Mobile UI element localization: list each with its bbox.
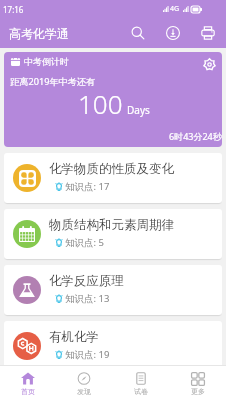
button[interactable]: 物质结构和元素周期律 — [4, 209, 222, 259]
staticText: 物质结构和元素周期律 — [49, 217, 174, 233]
button[interactable]: 化学反应原理 — [4, 265, 222, 315]
button[interactable]: 化学物质的性质及变化 — [4, 153, 222, 203]
staticText: 知识点: 19 — [65, 348, 110, 361]
button[interactable]: Search — [120, 18, 155, 48]
button[interactable]: 首页 — [0, 366, 56, 402]
staticText: 中考倒计时 — [24, 56, 69, 67]
staticText: 知识点: 5 — [65, 236, 104, 249]
staticText: 距离2019年中考还有 — [10, 75, 96, 88]
staticText: 知识点: 17 — [65, 180, 110, 193]
staticText: 试卷 — [134, 387, 148, 396]
button[interactable]: Download — [155, 18, 190, 48]
staticText: 首页 — [21, 387, 35, 396]
button[interactable]: 试卷 — [112, 366, 169, 402]
staticText: 100 — [78, 86, 123, 121]
staticText: 知识点: 13 — [65, 292, 110, 305]
staticText: 有机化学 — [49, 329, 99, 345]
staticText: 化学反应原理 — [49, 273, 124, 289]
button[interactable]: 中考倒计时 — [4, 52, 222, 147]
staticText: 发现 — [77, 387, 91, 396]
button[interactable]: Print — [190, 18, 225, 48]
staticText: 6时43分24秒 — [169, 130, 222, 142]
staticText: 更多 — [191, 387, 205, 396]
staticText: 17:16 — [3, 4, 24, 15]
staticText: 4G — [170, 4, 180, 14]
button[interactable]: Settings — [202, 57, 216, 71]
staticText: 化学物质的性质及变化 — [49, 161, 174, 177]
button[interactable]: 有机化学 — [4, 321, 222, 371]
button[interactable]: 更多 — [169, 366, 226, 402]
staticText: 高考化学通 — [9, 26, 69, 41]
staticText: Days — [127, 103, 150, 117]
button[interactable]: 发现 — [56, 366, 112, 402]
